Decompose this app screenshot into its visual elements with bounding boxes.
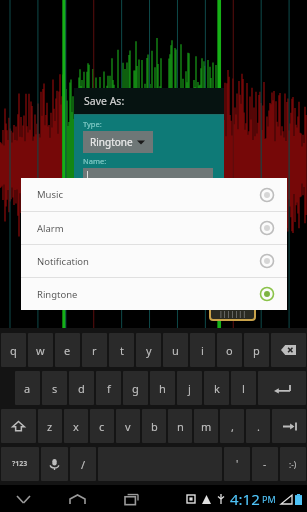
staticText: l — [242, 381, 245, 396]
button[interactable]: d — [69, 371, 94, 405]
button[interactable]: f — [96, 371, 121, 405]
staticText: e — [64, 343, 71, 358]
button[interactable]: ||||||| — [210, 307, 255, 320]
button[interactable]: r — [82, 333, 107, 367]
button[interactable]: u — [163, 333, 188, 367]
button[interactable]: b — [142, 409, 166, 443]
staticText: d — [78, 381, 85, 396]
staticText: y — [146, 343, 152, 358]
staticText: ?123 — [12, 459, 28, 469]
button[interactable]: h — [150, 371, 175, 405]
button[interactable]: w — [28, 333, 53, 367]
staticText: . — [257, 419, 260, 434]
button[interactable]: ?123 — [1, 447, 39, 481]
staticText: Ringtone — [90, 135, 133, 149]
button[interactable]: q — [1, 333, 26, 367]
button[interactable]: Tab — [272, 409, 306, 443]
staticText: i — [201, 343, 204, 358]
button[interactable]: Delete — [271, 333, 306, 367]
button[interactable]: o — [217, 333, 242, 367]
button[interactable]: :-) — [280, 447, 306, 481]
staticText: b — [151, 419, 158, 434]
staticText: n — [177, 419, 184, 434]
button[interactable]: Ringtone — [21, 278, 287, 310]
staticText: / — [81, 457, 86, 472]
button[interactable]: i — [190, 333, 215, 367]
staticText: Name: — [83, 156, 107, 166]
staticText: 4:12 — [230, 489, 260, 509]
button[interactable] — [83, 168, 213, 183]
staticText: :-) — [289, 459, 297, 470]
button[interactable]: Music — [21, 178, 287, 211]
button[interactable]: Recents — [118, 489, 144, 509]
staticText: h — [159, 381, 166, 396]
staticText: Notification — [37, 255, 259, 268]
staticText: - — [263, 457, 267, 471]
button[interactable]: z — [38, 409, 62, 443]
button[interactable]: - — [252, 447, 278, 481]
staticText: k — [214, 381, 220, 396]
staticText: o — [226, 343, 233, 358]
staticText: w — [36, 343, 45, 358]
button[interactable]: v — [116, 409, 140, 443]
staticText: PM — [262, 493, 276, 505]
staticText: u — [172, 343, 179, 358]
button[interactable]: j — [177, 371, 202, 405]
button[interactable]: g — [123, 371, 148, 405]
staticText: a — [24, 381, 31, 396]
button[interactable]: m — [194, 409, 218, 443]
staticText: p — [253, 343, 260, 358]
button[interactable]: Alarm — [21, 212, 287, 244]
button[interactable]: c — [90, 409, 114, 443]
button[interactable]: Voice input — [41, 447, 68, 481]
staticText: Type: — [83, 119, 102, 129]
button[interactable]: , — [220, 409, 244, 443]
button[interactable]: Notification — [21, 245, 287, 277]
button[interactable] — [1, 409, 36, 443]
button[interactable]: l — [231, 371, 256, 405]
button[interactable]: e — [55, 333, 80, 367]
staticText: c — [99, 419, 105, 434]
button[interactable]: s — [42, 371, 67, 405]
staticText: ' — [236, 457, 239, 471]
staticText: z — [47, 419, 53, 434]
button[interactable]: a — [15, 371, 40, 405]
staticText: x — [73, 419, 79, 434]
button[interactable]: t — [109, 333, 134, 367]
staticText: Save As: — [84, 94, 125, 108]
button[interactable]: Hide keyboard — [10, 489, 36, 509]
button[interactable]: Ringtone — [83, 131, 153, 153]
staticText: s — [52, 381, 58, 396]
staticText: Alarm — [37, 222, 259, 235]
staticText: v — [125, 419, 131, 434]
button[interactable]: k — [204, 371, 229, 405]
staticText: g — [132, 381, 139, 396]
button[interactable]: n — [168, 409, 192, 443]
button[interactable]: ' — [224, 447, 250, 481]
staticText: j — [188, 381, 191, 396]
staticText: Music — [37, 188, 259, 201]
button[interactable]: x — [64, 409, 88, 443]
staticText: m — [201, 419, 212, 434]
staticText: r — [92, 343, 97, 358]
staticText: Ringtone — [37, 288, 259, 301]
button[interactable]: y — [136, 333, 161, 367]
button[interactable]: Enter — [258, 371, 306, 405]
staticText: q — [10, 343, 17, 358]
button[interactable]: / — [70, 447, 96, 481]
staticText: ||||||| — [219, 309, 246, 319]
button[interactable]: p — [244, 333, 269, 367]
staticText: f — [107, 381, 111, 396]
staticText: t — [120, 343, 124, 358]
staticText: , — [231, 419, 234, 434]
button[interactable]: Home — [64, 489, 90, 509]
button[interactable]: . — [246, 409, 270, 443]
